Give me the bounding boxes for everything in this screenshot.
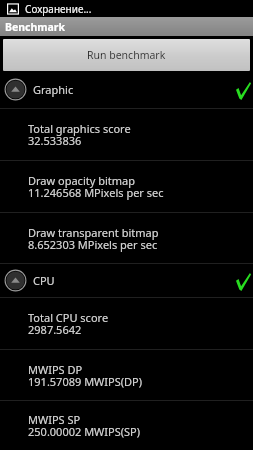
button[interactable]: Draw opacity bitmap 11.246568 MPixels pe… [0, 161, 253, 212]
staticText: Draw opacity bitmap 11.246568 MPixels pe… [28, 173, 164, 200]
button[interactable]: MWIPS DP 191.57089 MWIPS(DP) [0, 350, 253, 400]
staticText: Total CPU score 2987.5642 [28, 310, 109, 337]
staticText: Сохранение... [25, 2, 92, 16]
button[interactable]: Run benchmark [3, 39, 250, 71]
staticText: MWIPS DP 191.57089 MWIPS(DP) [28, 362, 143, 389]
button[interactable]: Total CPU score 2987.5642 [0, 298, 253, 349]
staticText: CPU [33, 273, 55, 288]
button[interactable]: Collapse CPU group [0, 264, 253, 297]
button[interactable]: Draw transparent bitmap 8.652303 MPixels… [0, 213, 253, 263]
button[interactable]: MWIPS SP 250.00002 MWIPS(SP) [0, 401, 253, 450]
staticText: Benchmark [5, 20, 66, 34]
button[interactable]: Benchmark [0, 17, 253, 36]
staticText: Draw transparent bitmap 8.652303 MPixels… [28, 225, 159, 252]
button[interactable]: Collapse Graphic group [0, 71, 253, 108]
staticText: Total graphics score 32.533836 [28, 121, 131, 148]
button[interactable]: Total graphics score 32.533836 [0, 109, 253, 160]
staticText: Graphic [33, 82, 74, 97]
staticText: MWIPS SP 250.00002 MWIPS(SP) [28, 412, 141, 439]
staticText: Run benchmark [87, 48, 166, 62]
